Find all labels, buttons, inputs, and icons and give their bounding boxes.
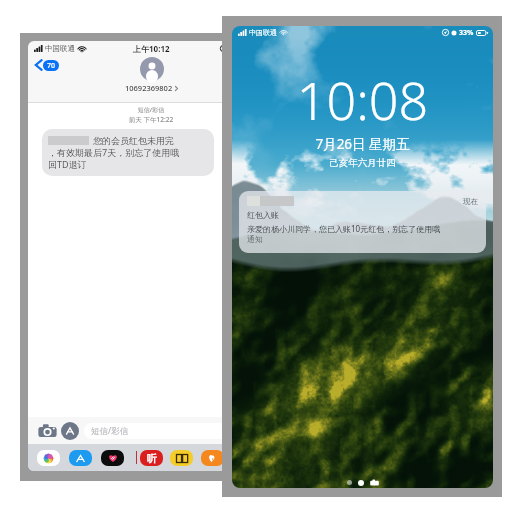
staticText: 您的会员红包未用完 — [93, 135, 174, 146]
staticText: ，有效期最后7天，别忘了使用哦 — [48, 146, 180, 158]
button[interactable]: App — [140, 450, 163, 466]
staticText: 上午10:12 — [133, 43, 170, 54]
staticText: 33% — [459, 28, 474, 38]
button[interactable]: App — [69, 450, 92, 466]
button[interactable]: 现在 — [239, 191, 486, 253]
staticText: 现在 — [463, 197, 478, 206]
staticText: 回TD退订 — [48, 158, 87, 170]
button[interactable]: App — [232, 450, 255, 466]
staticText: 中国联通 — [249, 28, 277, 37]
staticText: 10:08 — [232, 64, 493, 135]
button[interactable]: Back — [33, 57, 61, 73]
staticText: 中国联通 — [45, 44, 75, 53]
staticText: 亲爱的杨小川同学，您已入账10元红包，别忘了使用哦 — [247, 223, 441, 234]
button[interactable]: 10692369802 — [125, 57, 178, 93]
staticText: 短信/彩信 — [28, 106, 274, 114]
staticText: 红包入账 — [247, 210, 279, 220]
staticText: 10692369802 — [125, 83, 173, 93]
staticText: 短信/彩信 — [91, 425, 129, 437]
staticText: 7月26日 星期五 — [232, 135, 493, 153]
button[interactable]: 您的会员红包未用完 — [42, 129, 214, 176]
button[interactable]: App — [201, 450, 224, 466]
button[interactable]: Camera — [38, 423, 57, 438]
button[interactable]: App Store — [60, 421, 80, 441]
staticText: 听 — [147, 452, 157, 465]
staticText: 前天 下午12:22 — [28, 115, 274, 124]
button[interactable]: Camera — [370, 479, 379, 486]
staticText: 己亥年六月廿四 — [232, 157, 493, 169]
staticText: 通知 — [247, 234, 263, 244]
button[interactable]: App — [170, 450, 193, 466]
button[interactable]: App — [37, 450, 60, 466]
staticText: 70 — [47, 61, 56, 71]
button[interactable]: 短信/彩信 — [84, 423, 268, 439]
button[interactable]: App — [101, 450, 124, 466]
